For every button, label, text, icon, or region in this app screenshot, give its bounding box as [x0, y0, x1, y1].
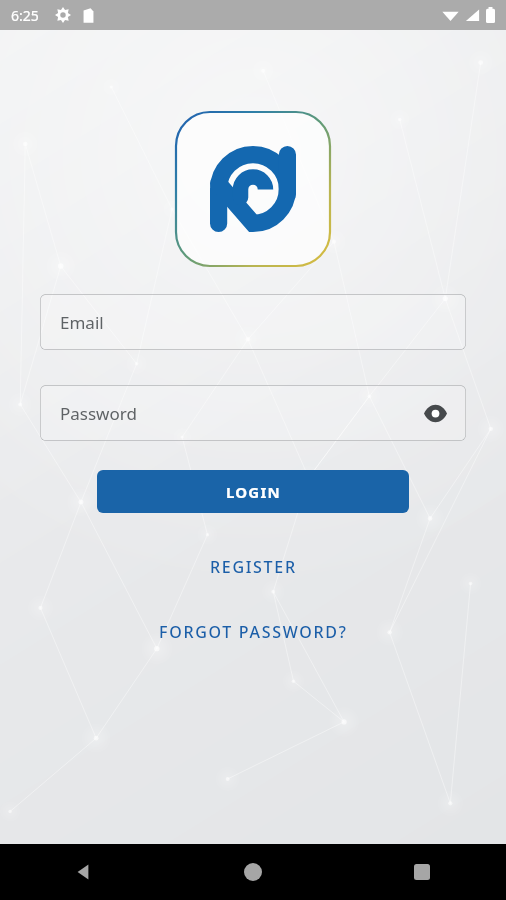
button[interactable]: Password: [40, 385, 466, 441]
staticText: FORGOT PASSWORD?: [159, 621, 348, 643]
button[interactable]: FORGOT PASSWORD?: [143, 614, 364, 650]
staticText: LOGIN: [226, 482, 281, 502]
button[interactable]: REGISTER: [194, 549, 313, 585]
staticText: Password: [60, 402, 137, 425]
staticText: Email: [60, 311, 104, 334]
button[interactable]: Back: [0, 844, 168, 900]
button[interactable]: Show password: [420, 398, 450, 428]
staticText: 6:25: [11, 6, 39, 25]
button[interactable]: Recent apps: [337, 844, 506, 900]
button[interactable]: Email: [40, 294, 466, 350]
button[interactable]: Home: [168, 844, 337, 900]
button[interactable]: LOGIN: [97, 470, 409, 513]
staticText: REGISTER: [210, 556, 297, 578]
